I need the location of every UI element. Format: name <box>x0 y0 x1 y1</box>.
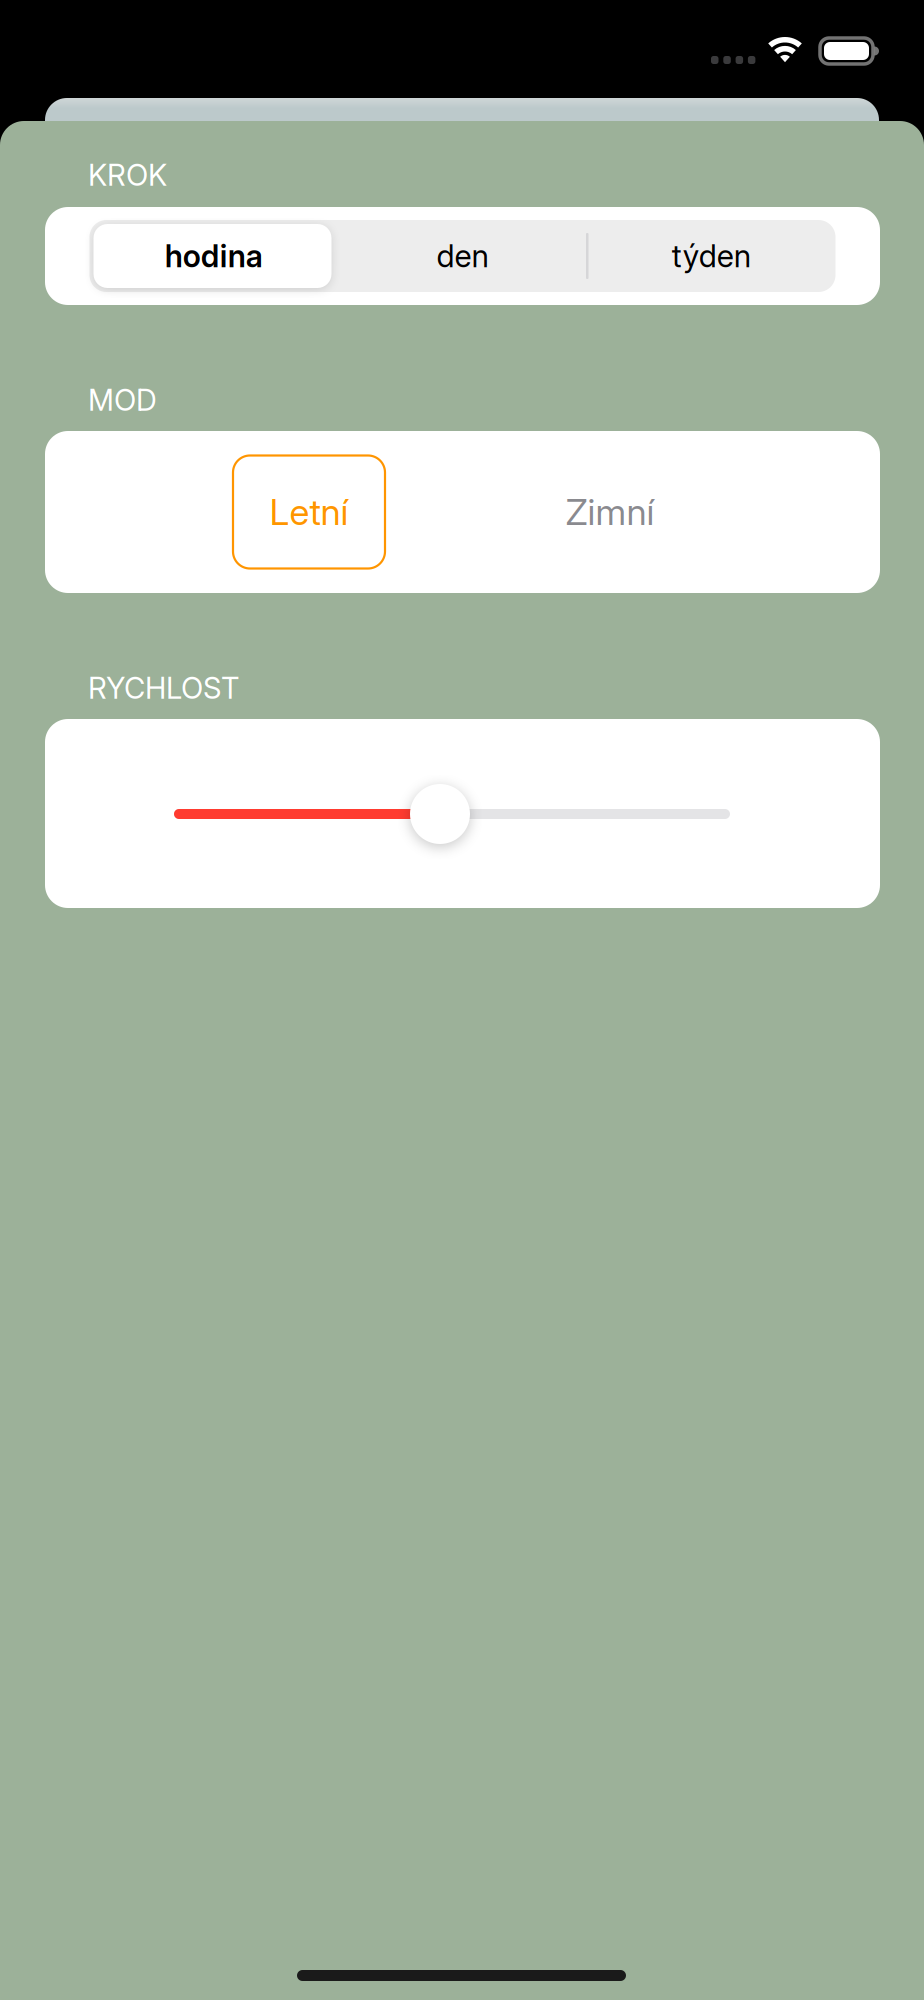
staticText: MOD <box>88 382 157 418</box>
staticText: RYCHLOST <box>88 670 239 706</box>
button[interactable]: den <box>338 220 587 292</box>
staticText: týden <box>672 237 751 274</box>
staticText: KROK <box>88 157 167 193</box>
button[interactable]: Zimní <box>520 455 700 568</box>
staticText: Zimní <box>565 490 654 534</box>
staticText: hodina <box>165 237 263 274</box>
staticText: den <box>436 237 488 274</box>
button[interactable]: týden <box>587 220 835 292</box>
staticText: Letní <box>269 490 348 534</box>
button[interactable]: Letní <box>233 455 385 568</box>
button[interactable]: hodina <box>89 220 338 292</box>
